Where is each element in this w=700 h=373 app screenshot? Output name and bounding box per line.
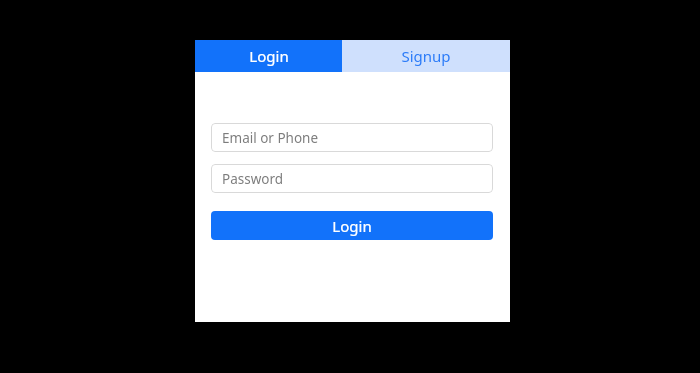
staticText: Signup (401, 46, 451, 66)
staticText: Login (332, 216, 372, 236)
button[interactable]: Email or Phone (211, 123, 493, 152)
staticText: Login (249, 46, 289, 66)
button[interactable]: Signup (342, 40, 510, 72)
staticText: Password (222, 170, 284, 188)
button[interactable]: Login (195, 40, 342, 72)
staticText: Email or Phone (222, 129, 319, 147)
button[interactable]: Login (211, 211, 493, 240)
button[interactable]: Password (211, 164, 493, 193)
